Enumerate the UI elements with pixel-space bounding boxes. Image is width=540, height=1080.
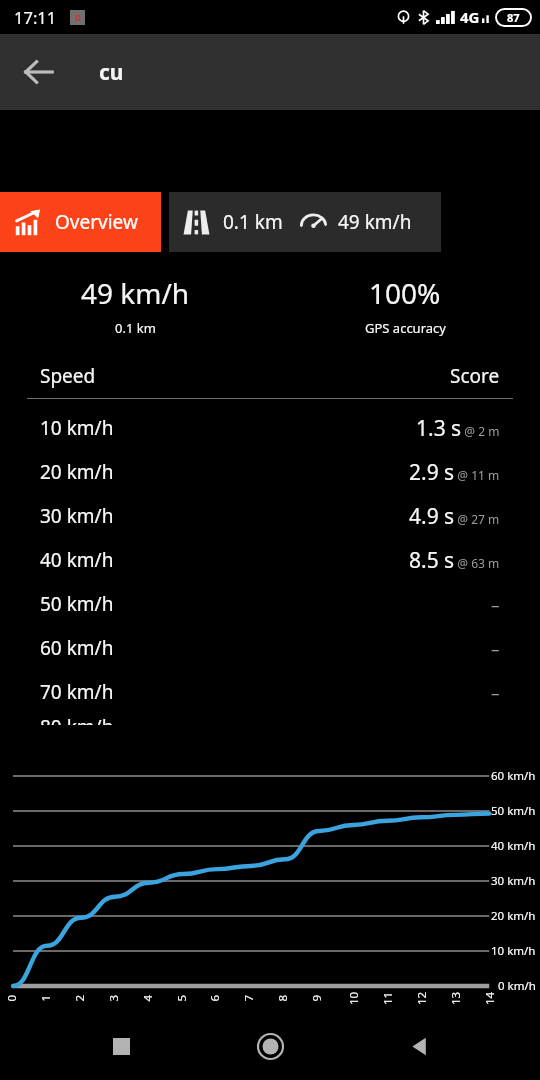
staticText: 6 (206, 994, 222, 1001)
staticText: 2.9 s @ 11 m (409, 458, 500, 487)
button[interactable]: Back (11, 44, 67, 100)
staticText: 60 km/h (491, 768, 536, 784)
staticText: 17:11 (14, 6, 57, 28)
staticText: 40 km/h (40, 547, 114, 573)
staticText: – (491, 637, 500, 660)
staticText: 5 (173, 994, 189, 1001)
button[interactable]: Recent apps (93, 1018, 149, 1074)
staticText: 2 (71, 994, 87, 1001)
staticText: 20 km/h (40, 459, 114, 485)
staticText: 11 (380, 991, 396, 1005)
staticText: 8.5 s @ 63 m (409, 546, 500, 575)
staticText: 1.3 s @ 2 m (416, 414, 500, 443)
staticText: 60 km/h (40, 635, 114, 661)
staticText: 0.1 km (223, 209, 283, 235)
staticText: 3 (105, 994, 121, 1001)
button[interactable]: Back (391, 1018, 447, 1074)
button[interactable]: 0.1 km (169, 192, 441, 252)
staticText: 13 (448, 991, 464, 1005)
staticText: 14 (482, 991, 498, 1005)
button[interactable]: Overview (0, 192, 161, 252)
button[interactable]: 10 km/h (0, 406, 540, 450)
button[interactable]: 40 km/h (0, 538, 540, 582)
staticText: 20 km/h (491, 908, 536, 924)
staticText: 7 (240, 994, 256, 1001)
staticText: cu (99, 58, 124, 87)
staticText: 4 (139, 994, 155, 1001)
staticText: 10 km/h (491, 943, 536, 959)
staticText: 8 (274, 994, 290, 1001)
staticText: 12 (414, 991, 430, 1005)
button[interactable]: 80 km/h (0, 714, 540, 725)
staticText: 0.1 km (115, 319, 156, 337)
button[interactable]: 70 km/h (0, 670, 540, 714)
staticText: GPS accuracy (365, 319, 446, 337)
staticText: 30 km/h (40, 503, 114, 529)
staticText: 1 (37, 994, 53, 1001)
staticText: 4.9 s @ 27 m (409, 502, 500, 531)
staticText: 80 km/h (40, 714, 114, 725)
staticText: Speed (40, 363, 96, 389)
staticText: – (491, 681, 500, 704)
staticText: 40 km/h (491, 838, 536, 854)
staticText: 10 km/h (40, 415, 114, 441)
staticText: 100% (369, 274, 441, 312)
button[interactable]: 30 km/h (0, 494, 540, 538)
button[interactable]: 50 km/h (0, 582, 540, 626)
staticText: 0 km/h (498, 978, 536, 994)
staticText: 50 km/h (40, 591, 114, 617)
staticText: 50 km/h (491, 803, 536, 819)
staticText: Score (450, 363, 500, 389)
button[interactable]: Home (242, 1018, 298, 1074)
staticText: 49 km/h (81, 274, 190, 312)
staticText: 10 (346, 991, 362, 1005)
button[interactable]: 20 km/h (0, 450, 540, 494)
button[interactable]: 60 km/h (0, 626, 540, 670)
staticText: D (75, 12, 81, 23)
staticText: 4G (460, 7, 480, 27)
staticText: 30 km/h (491, 873, 536, 889)
staticText: 87 (507, 10, 520, 25)
staticText: 0 (3, 994, 19, 1001)
staticText: 70 km/h (40, 679, 114, 705)
staticText: 9 (308, 994, 324, 1001)
staticText: – (491, 593, 500, 616)
staticText: Overview (55, 209, 138, 235)
staticText: 49 km/h (338, 209, 412, 235)
